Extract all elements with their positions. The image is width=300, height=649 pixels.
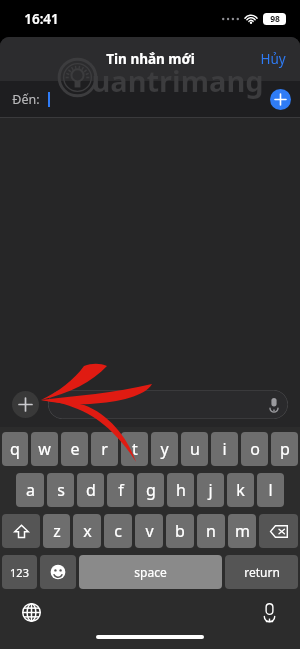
button[interactable]: Đổi bàn phím xyxy=(17,598,45,626)
staticText: u xyxy=(190,438,200,460)
staticText: e xyxy=(70,438,80,460)
button[interactable]: Thêm đính kèm xyxy=(12,391,39,418)
staticText: o xyxy=(250,438,260,460)
staticText: n xyxy=(206,520,216,542)
button[interactable]: w xyxy=(31,432,58,466)
staticText: z xyxy=(53,520,61,542)
button[interactable]: e xyxy=(61,432,88,466)
staticText: Hủy xyxy=(260,50,286,68)
staticText: q xyxy=(10,438,20,460)
staticText: space xyxy=(134,564,167,580)
button[interactable]: a xyxy=(16,473,44,507)
button[interactable]: g xyxy=(137,473,164,507)
staticText: g xyxy=(146,479,156,501)
button[interactable]: m xyxy=(228,514,256,548)
staticText: j xyxy=(208,479,213,501)
staticText: x xyxy=(83,520,92,542)
button[interactable]: i xyxy=(211,432,238,466)
button[interactable]: d xyxy=(77,473,104,507)
staticText: p xyxy=(280,438,290,460)
staticText: h xyxy=(176,479,186,501)
staticText: d xyxy=(86,479,96,501)
staticText: a xyxy=(26,479,35,501)
button[interactable]: Shift xyxy=(2,514,40,548)
button[interactable]: Hủy xyxy=(246,40,300,78)
button[interactable]: Xóa xyxy=(259,514,298,548)
button[interactable]: t xyxy=(121,432,148,466)
staticText: return xyxy=(244,564,280,580)
button[interactable]: Nhập bằng giọng nói xyxy=(255,598,283,626)
staticText: m xyxy=(235,520,250,542)
staticText: Đến: xyxy=(12,91,40,108)
button[interactable]: b xyxy=(166,514,194,548)
button[interactable]: p xyxy=(271,432,298,466)
staticText: f xyxy=(118,479,124,501)
button[interactable] xyxy=(48,390,288,419)
button[interactable]: k xyxy=(227,473,254,507)
staticText: i xyxy=(222,438,227,460)
button[interactable]: z xyxy=(43,514,70,548)
button[interactable]: f xyxy=(107,473,134,507)
staticText: v xyxy=(145,520,154,542)
button[interactable]: c xyxy=(104,514,132,548)
button[interactable]: y xyxy=(151,432,178,466)
button[interactable]: x xyxy=(73,514,101,548)
staticText: w xyxy=(38,438,51,460)
button[interactable]: return xyxy=(225,555,298,589)
button[interactable]: j xyxy=(197,473,224,507)
staticText: r xyxy=(101,438,108,460)
button[interactable]: Biểu tượng cảm xúc xyxy=(40,555,76,589)
staticText: t xyxy=(132,438,138,460)
staticText: y xyxy=(160,438,169,460)
staticText: 16:41 xyxy=(24,10,59,28)
staticText: 98 xyxy=(270,13,280,25)
button[interactable]: q xyxy=(2,432,28,466)
button[interactable]: v xyxy=(135,514,163,548)
button[interactable]: space xyxy=(79,555,222,589)
button[interactable]: h xyxy=(167,473,194,507)
button[interactable]: s xyxy=(47,473,74,507)
button[interactable]: 123 xyxy=(2,555,37,589)
button[interactable]: l xyxy=(257,473,284,507)
staticText: k xyxy=(236,479,245,501)
button[interactable]: n xyxy=(197,514,225,548)
staticText: 123 xyxy=(10,565,29,580)
staticText: uantrimang xyxy=(91,61,264,100)
button[interactable]: u xyxy=(181,432,208,466)
staticText: l xyxy=(268,479,273,501)
staticText: b xyxy=(175,520,185,542)
staticText: Tin nhắn mới xyxy=(106,50,195,68)
staticText: c xyxy=(114,520,122,542)
button[interactable]: o xyxy=(241,432,268,466)
button[interactable]: Thêm người nhận xyxy=(270,89,291,110)
staticText: s xyxy=(57,479,65,501)
button[interactable]: r xyxy=(91,432,118,466)
